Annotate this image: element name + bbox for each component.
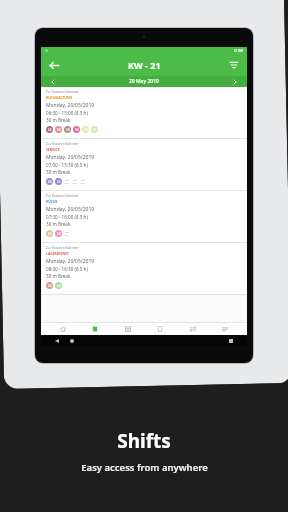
staticText: AB — [75, 128, 79, 132]
staticText: 20 May 2019 — [129, 78, 159, 85]
staticText: Monday, 20/05/2019 — [46, 154, 95, 161]
staticText: 30 m Break — [46, 221, 71, 227]
staticText: 30 m Break — [46, 117, 71, 123]
button[interactable]: Zur Rotation Kalender — [41, 243, 247, 294]
staticText: BUCHHALTUNG — [46, 95, 73, 100]
staticText: AB — [48, 284, 52, 288]
button[interactable]: Requests — [149, 322, 171, 335]
staticText: AB — [48, 232, 52, 236]
button[interactable]: Swap — [182, 322, 204, 335]
button[interactable]: Calendar — [117, 322, 139, 335]
staticText: 30 m Break — [46, 273, 71, 279]
staticText: 30 m Break — [46, 169, 71, 175]
button[interactable]: Zur Rotation Kalender — [41, 139, 247, 190]
staticText: Shifts — [117, 428, 171, 454]
staticText: 08:00 - 16:30 (8.5 h) — [46, 266, 88, 272]
staticText: AB — [57, 232, 61, 236]
staticText: AB — [84, 128, 88, 132]
button[interactable]: Filter — [227, 58, 241, 72]
staticText: AB — [57, 180, 61, 184]
staticText: 07:00 - 15:30 (8.5 h) — [46, 162, 88, 168]
button[interactable]: Home — [52, 322, 74, 335]
staticText: Zur Rotation Kalender — [46, 142, 79, 146]
button[interactable]: More — [214, 322, 236, 335]
staticText: AB — [48, 128, 52, 132]
staticText: Zur Rotation Kalender — [46, 194, 79, 198]
staticText: Monday, 20/05/2019 — [46, 102, 95, 109]
staticText: 06:30 - 15:00 (8.5 h) — [46, 110, 88, 116]
staticText: AB — [57, 128, 61, 132]
staticText: AB — [93, 128, 97, 132]
staticText: Zur Rotation Kalender — [46, 246, 79, 250]
staticText: 07:30 - 16:00 (8.5 h) — [46, 214, 88, 220]
staticText: AB — [66, 128, 70, 132]
staticText: Easy access from anywhere — [81, 461, 208, 474]
button[interactable]: Zur Rotation Kalender — [41, 191, 247, 242]
staticText: Monday, 20/05/2019 — [46, 206, 95, 213]
staticText: KW - 21 — [128, 59, 161, 71]
button[interactable]: Zur Rotation Kalender — [41, 87, 247, 138]
button[interactable]: Next week — [231, 78, 239, 86]
staticText: AB — [48, 180, 52, 184]
staticText: Zur Rotation Kalender — [46, 90, 79, 94]
staticText: LAGERDIENST — [46, 251, 70, 256]
button[interactable]: Back — [47, 58, 61, 72]
button[interactable]: Shifts — [84, 322, 106, 335]
button[interactable]: Previous week — [49, 78, 57, 86]
staticText: Monday, 20/05/2019 — [46, 258, 95, 265]
staticText: AB — [57, 284, 61, 288]
staticText: SERVICE — [46, 147, 60, 152]
staticText: KÜCHE — [46, 199, 58, 204]
